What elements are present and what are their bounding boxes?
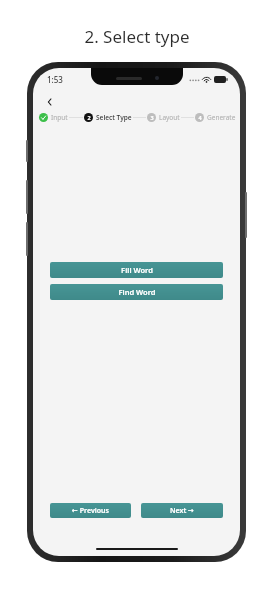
button[interactable]: Next → [141,503,223,518]
button[interactable]: Input [39,113,68,122]
button[interactable]: Back [40,92,60,112]
staticText: 2. Select type [84,25,190,48]
staticText: Next → [170,506,194,516]
staticText: Generate [207,113,236,122]
staticText: ← Previous [72,506,109,516]
staticText: Layout [159,113,180,122]
button[interactable]: ← Previous [50,503,131,518]
staticText: Fill Word [121,265,153,275]
button[interactable]: Fill Word [50,262,223,278]
button[interactable]: 2 [84,113,132,122]
staticText: Find Word [118,287,156,297]
button[interactable]: Find Word [50,284,223,300]
button[interactable]: 4 [195,113,236,122]
staticText: 4 [198,114,202,121]
staticText: Input [51,113,68,122]
staticText: 2 [87,114,91,121]
staticText: 1:53 [47,74,63,85]
staticText: 3 [150,114,154,121]
staticText: Select Type [96,113,132,122]
button[interactable]: 3 [147,113,180,122]
